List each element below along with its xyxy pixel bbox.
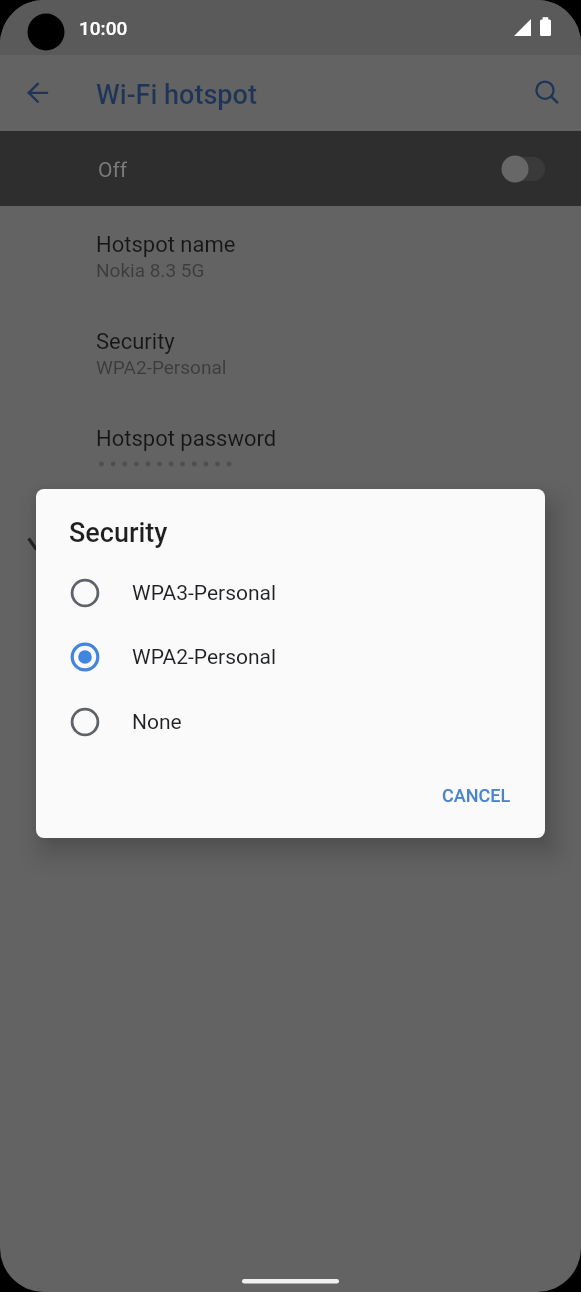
staticText: None	[132, 710, 182, 735]
staticText: Off	[98, 158, 128, 183]
staticText: WPA2-Personal	[132, 645, 277, 670]
staticText: CANCEL	[442, 785, 511, 806]
button[interactable]: None	[36, 690, 545, 754]
staticText: 10:00	[79, 17, 128, 39]
button[interactable]: WPA3-Personal	[36, 561, 545, 625]
button[interactable]: Hotspot password	[0, 400, 581, 497]
button[interactable]: Navigate up	[10, 65, 66, 121]
staticText: Security	[96, 329, 175, 355]
button[interactable]: Off	[0, 131, 581, 206]
staticText: WPA2-Personal	[96, 356, 227, 378]
button[interactable]: WPA2-Personal	[36, 625, 545, 689]
staticText: Nokia 8.3 5G	[96, 259, 205, 281]
staticText: Security	[69, 517, 168, 549]
button[interactable]: Search	[517, 65, 573, 121]
staticText: Hotspot password	[96, 426, 277, 452]
button[interactable]: Security	[0, 303, 581, 400]
staticText: Wi-Fi hotspot	[96, 79, 257, 111]
button[interactable]: CANCEL	[424, 771, 528, 819]
button[interactable]: Hotspot name	[0, 206, 581, 303]
staticText: Hotspot name	[96, 232, 236, 258]
staticText: WPA3-Personal	[132, 581, 277, 606]
